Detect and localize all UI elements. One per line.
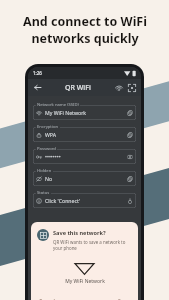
button[interactable]: Back bbox=[31, 81, 44, 94]
button[interactable]: Connect to WiFi bbox=[112, 81, 125, 94]
staticText: No bbox=[45, 175, 53, 182]
staticText: Network name (SSID) bbox=[37, 102, 79, 108]
staticText: Save this network? bbox=[53, 229, 106, 237]
staticText: QR WiFi wants to save a network to your … bbox=[53, 239, 132, 251]
staticText: Cancel bbox=[39, 298, 55, 300]
button[interactable]: Save bbox=[116, 296, 132, 300]
staticText: My WiFi Network bbox=[65, 278, 105, 285]
staticText: My WiFi Network bbox=[45, 109, 87, 116]
staticText: •••••••• bbox=[45, 153, 61, 160]
staticText: Status bbox=[37, 190, 50, 196]
button[interactable]: Click 'Connect' bbox=[33, 193, 136, 208]
staticText: Encryption bbox=[37, 124, 59, 130]
staticText: Click 'Connect' bbox=[45, 197, 81, 204]
staticText: Password bbox=[37, 146, 56, 152]
button[interactable]: Cancel bbox=[37, 296, 57, 300]
staticText: QR WiFi bbox=[65, 83, 91, 93]
staticText: Save bbox=[118, 298, 130, 300]
staticText: 1:26 bbox=[33, 70, 42, 76]
button[interactable]: My WiFi Network bbox=[33, 105, 136, 120]
staticText: WPA bbox=[45, 131, 57, 138]
button[interactable]: No bbox=[33, 171, 136, 186]
staticText: Hidden bbox=[37, 168, 52, 174]
button[interactable]: Scan QR code bbox=[125, 81, 138, 94]
button[interactable]: •••••••• bbox=[33, 149, 136, 164]
button[interactable]: WPA bbox=[33, 127, 136, 142]
staticText: And connect to WiFi networks quickly bbox=[23, 13, 147, 46]
